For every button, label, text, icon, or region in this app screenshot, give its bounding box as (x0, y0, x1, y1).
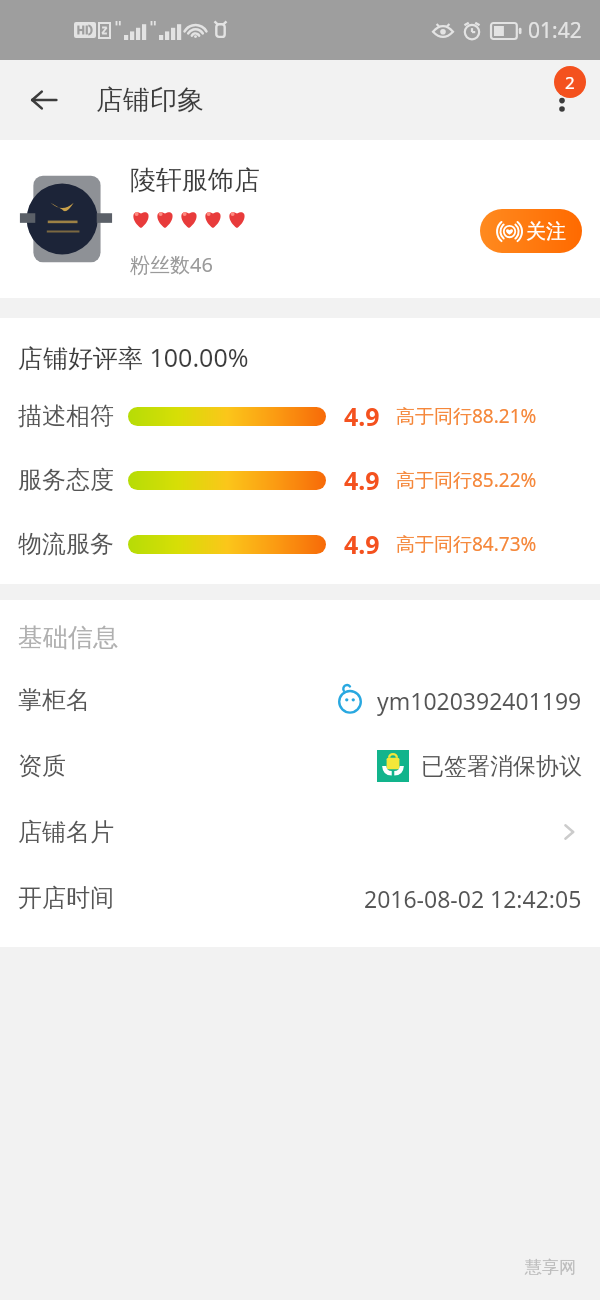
staticText: 店铺好评率 100.00% (18, 340, 249, 374)
staticText: 01:42 (528, 16, 582, 45)
staticText: 高于同行88.21% (396, 403, 537, 429)
button[interactable]: 开店时间 (0, 865, 600, 931)
staticText: 高于同行84.73% (396, 531, 537, 557)
button[interactable]: 资质 (0, 733, 600, 799)
staticText: 基础信息 (18, 622, 118, 653)
staticText: 服务态度 (18, 465, 114, 495)
staticText: 4.9 (344, 527, 380, 561)
staticText: 慧享网 (525, 1257, 576, 1278)
staticText: 陵轩服饰店 (130, 164, 260, 197)
staticText: 关注 (526, 219, 566, 244)
staticText: 高于同行85.22% (396, 467, 537, 493)
staticText: ym1020392401199 (377, 685, 582, 716)
staticText: 掌柜名 (18, 685, 90, 715)
staticText: 2016-08-02 12:42:05 (364, 883, 582, 914)
staticText: 店铺印象 (96, 83, 204, 117)
button[interactable]: 关注 (480, 209, 582, 253)
staticText: 粉丝数46 (130, 251, 213, 278)
staticText: 开店时间 (18, 883, 114, 913)
staticText: 资质 (18, 751, 66, 781)
staticText: 店铺名片 (18, 817, 114, 847)
button[interactable]: Back (16, 72, 72, 128)
staticText: 已签署消保协议 (421, 752, 582, 781)
button[interactable]: 店铺名片 (0, 799, 600, 865)
button[interactable]: 掌柜名 (0, 667, 600, 733)
staticText: 2 (565, 71, 575, 94)
staticText: 描述相符 (18, 401, 114, 431)
button[interactable]: More options (532, 70, 592, 130)
staticText: 物流服务 (18, 529, 114, 559)
staticText: 4.9 (344, 463, 380, 497)
staticText: 4.9 (344, 399, 380, 433)
